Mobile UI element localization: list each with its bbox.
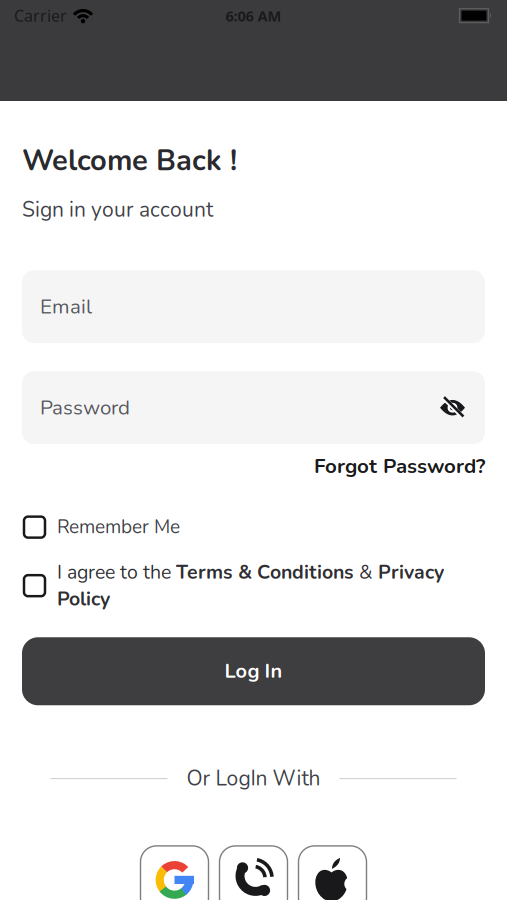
staticText: Remember Me bbox=[57, 514, 180, 540]
button[interactable]: I agree to the Terms & Conditions & Priv… bbox=[22, 559, 485, 612]
button[interactable]: Log in with Apple bbox=[298, 846, 366, 900]
staticText: Welcome Back ! bbox=[22, 141, 237, 181]
button[interactable]: Forgot Password? bbox=[314, 452, 485, 480]
staticText: Policy bbox=[57, 586, 110, 612]
staticText: Or LogIn With bbox=[186, 764, 320, 793]
staticText: 6:06 AM bbox=[225, 6, 281, 25]
button[interactable]: Password bbox=[22, 371, 485, 444]
staticText: Carrier bbox=[14, 5, 67, 26]
button[interactable]: Log in with phone bbox=[219, 846, 287, 900]
button[interactable]: Email bbox=[22, 270, 485, 343]
staticText: Email bbox=[40, 293, 92, 321]
staticText: Forgot Password? bbox=[314, 452, 485, 480]
button[interactable]: Remember Me bbox=[22, 514, 485, 540]
button[interactable]: Log In bbox=[22, 637, 485, 705]
staticText: Log In bbox=[224, 658, 282, 685]
staticText: I agree to the Terms & Conditions & Priv… bbox=[57, 559, 444, 586]
staticText: Password bbox=[40, 394, 130, 422]
button[interactable]: Log in with Google bbox=[140, 846, 208, 900]
staticText: Sign in your account bbox=[22, 196, 213, 224]
